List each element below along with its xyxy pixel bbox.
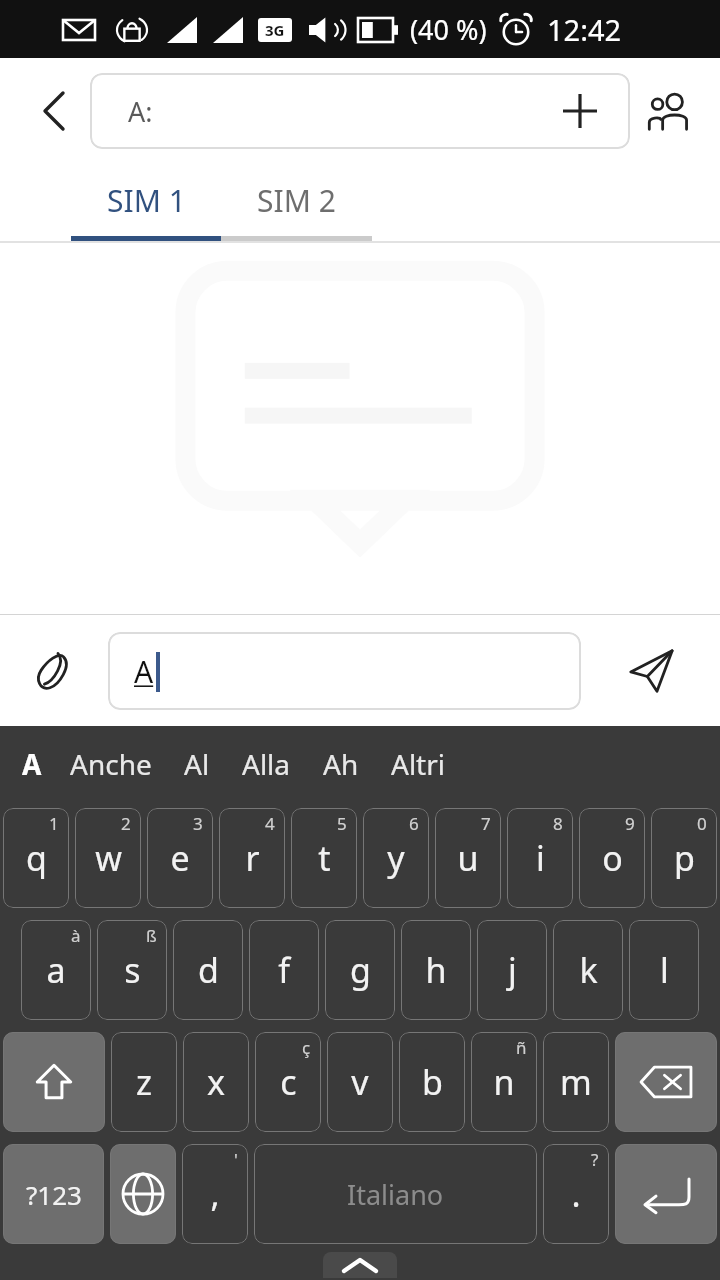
staticText: 9 xyxy=(625,812,635,835)
button[interactable]: g xyxy=(325,920,395,1020)
staticText: k xyxy=(579,947,598,993)
button[interactable]: d xyxy=(173,920,243,1020)
staticText: d xyxy=(198,947,219,993)
button[interactable]: ?123 xyxy=(3,1144,104,1244)
staticText: e xyxy=(170,835,190,881)
button[interactable]: Contacts xyxy=(638,79,702,143)
staticText: f xyxy=(278,947,290,993)
staticText: b xyxy=(422,1059,443,1105)
staticText: SIM 1 xyxy=(107,180,186,221)
staticText: à xyxy=(71,924,81,947)
button[interactable]: ç xyxy=(255,1032,321,1132)
button[interactable]: 7 xyxy=(435,808,501,908)
staticText: r xyxy=(245,835,260,881)
staticText: q xyxy=(26,835,47,881)
button[interactable]: 1 xyxy=(3,808,69,908)
button[interactable]: 5 xyxy=(291,808,357,908)
staticText: ß xyxy=(146,924,157,947)
staticText: 7 xyxy=(481,812,491,835)
button[interactable]: x xyxy=(183,1032,249,1132)
staticText: SIM 2 xyxy=(257,180,336,221)
button[interactable]: Anche xyxy=(70,726,152,802)
staticText: j xyxy=(508,947,517,993)
staticText: 8 xyxy=(553,812,563,835)
staticText: v xyxy=(351,1059,369,1105)
button[interactable]: SIM 2 xyxy=(221,164,371,236)
button[interactable]: ' xyxy=(182,1144,248,1244)
staticText: ? xyxy=(591,1148,599,1171)
button[interactable]: v xyxy=(327,1032,393,1132)
button[interactable]: b xyxy=(399,1032,465,1132)
staticText: g xyxy=(350,947,371,993)
button[interactable]: Backspace xyxy=(615,1032,717,1132)
staticText: s xyxy=(124,947,141,993)
staticText: t xyxy=(318,835,331,881)
staticText: ' xyxy=(234,1148,238,1171)
staticText: Al xyxy=(184,745,210,783)
button[interactable]: Hide keyboard xyxy=(323,1252,397,1278)
staticText: Alla xyxy=(242,745,291,783)
button[interactable]: j xyxy=(477,920,547,1020)
staticText: ?123 xyxy=(26,1177,82,1212)
button[interactable]: A: xyxy=(90,73,630,149)
button[interactable]: Space xyxy=(254,1144,537,1244)
button[interactable]: ? xyxy=(543,1144,609,1244)
staticText: 3G xyxy=(265,20,285,40)
staticText: 0 xyxy=(697,812,707,835)
staticText: ñ xyxy=(516,1036,527,1059)
button[interactable]: k xyxy=(553,920,623,1020)
button[interactable]: Alla xyxy=(242,726,291,802)
button[interactable]: Add recipient xyxy=(556,87,604,135)
button[interactable]: z xyxy=(111,1032,177,1132)
staticText: (40 %) xyxy=(410,11,487,48)
staticText: 1 xyxy=(49,812,59,835)
button[interactable]: 9 xyxy=(579,808,645,908)
staticText: u xyxy=(457,835,479,881)
button[interactable]: 0 xyxy=(651,808,717,908)
staticText: 6 xyxy=(409,812,419,835)
button[interactable]: 6 xyxy=(363,808,429,908)
button[interactable]: ß xyxy=(97,920,167,1020)
button[interactable]: l xyxy=(629,920,699,1020)
button[interactable]: Back xyxy=(20,77,88,145)
button[interactable]: Attach xyxy=(20,637,88,705)
button[interactable]: h xyxy=(401,920,471,1020)
staticText: z xyxy=(136,1059,152,1105)
button[interactable]: Ah xyxy=(323,726,359,802)
button[interactable]: Send xyxy=(581,615,720,726)
staticText: Ah xyxy=(323,745,359,783)
staticText: h xyxy=(425,947,447,993)
button[interactable]: Change language xyxy=(110,1144,176,1244)
button[interactable]: A xyxy=(10,726,54,802)
button[interactable]: 2 xyxy=(75,808,141,908)
button[interactable]: Enter xyxy=(615,1144,717,1244)
staticText: 2 xyxy=(121,812,131,835)
button[interactable]: m xyxy=(543,1032,609,1132)
staticText: m xyxy=(560,1059,592,1105)
button[interactable]: SIM 1 xyxy=(71,164,221,236)
staticText: , xyxy=(210,1171,220,1217)
staticText: n xyxy=(493,1059,515,1105)
button[interactable]: 3 xyxy=(147,808,213,908)
staticText: y xyxy=(387,835,405,881)
button[interactable]: A xyxy=(108,632,581,710)
staticText: ç xyxy=(302,1036,311,1059)
staticText: Italiano xyxy=(347,1176,444,1213)
button[interactable]: 4 xyxy=(219,808,285,908)
button[interactable]: 8 xyxy=(507,808,573,908)
staticText: Anche xyxy=(70,745,152,783)
staticText: l xyxy=(660,947,669,993)
staticText: A: xyxy=(128,93,556,130)
button[interactable]: à xyxy=(21,920,91,1020)
button[interactable]: ñ xyxy=(471,1032,537,1132)
staticText: 5 xyxy=(337,812,347,835)
button[interactable]: Shift xyxy=(3,1032,105,1132)
button[interactable]: Al xyxy=(184,726,210,802)
staticText: 12:42 xyxy=(547,10,622,49)
staticText: c xyxy=(280,1059,297,1105)
staticText: w xyxy=(95,835,122,881)
button[interactable]: f xyxy=(249,920,319,1020)
staticText: p xyxy=(674,835,695,881)
button[interactable]: Altri xyxy=(391,726,446,802)
staticText: Altri xyxy=(391,745,446,783)
